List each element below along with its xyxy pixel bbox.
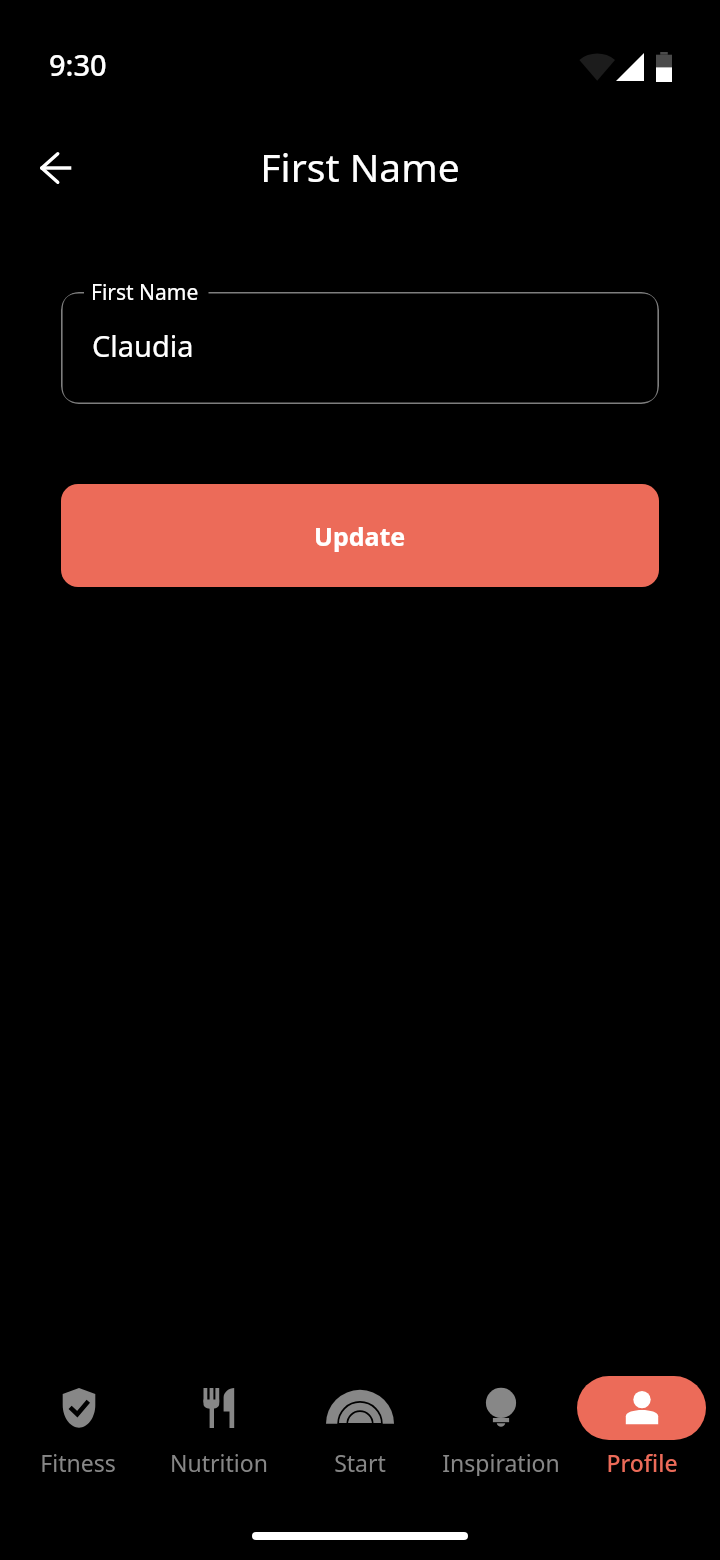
button[interactable]: Start	[289, 1376, 430, 1476]
staticText: First Name	[91, 278, 199, 307]
staticText: Profile	[606, 1447, 678, 1476]
button[interactable]: Back	[30, 142, 82, 194]
staticText: First Name	[0, 140, 720, 193]
staticText: 9:30	[49, 45, 107, 84]
staticText: Claudia	[92, 326, 194, 365]
button[interactable]: Nutrition	[148, 1376, 289, 1476]
staticText: Nutrition	[170, 1447, 268, 1476]
button[interactable]: Profile	[571, 1376, 712, 1476]
button[interactable]: Inspiration	[430, 1376, 571, 1476]
button[interactable]: Update	[61, 484, 659, 587]
staticText: Start	[334, 1447, 386, 1476]
staticText: Fitness	[40, 1447, 116, 1476]
button[interactable]: Claudia	[61, 292, 659, 404]
staticText: Inspiration	[442, 1447, 560, 1476]
button[interactable]: Fitness	[8, 1376, 148, 1476]
staticText: Update	[314, 519, 406, 553]
